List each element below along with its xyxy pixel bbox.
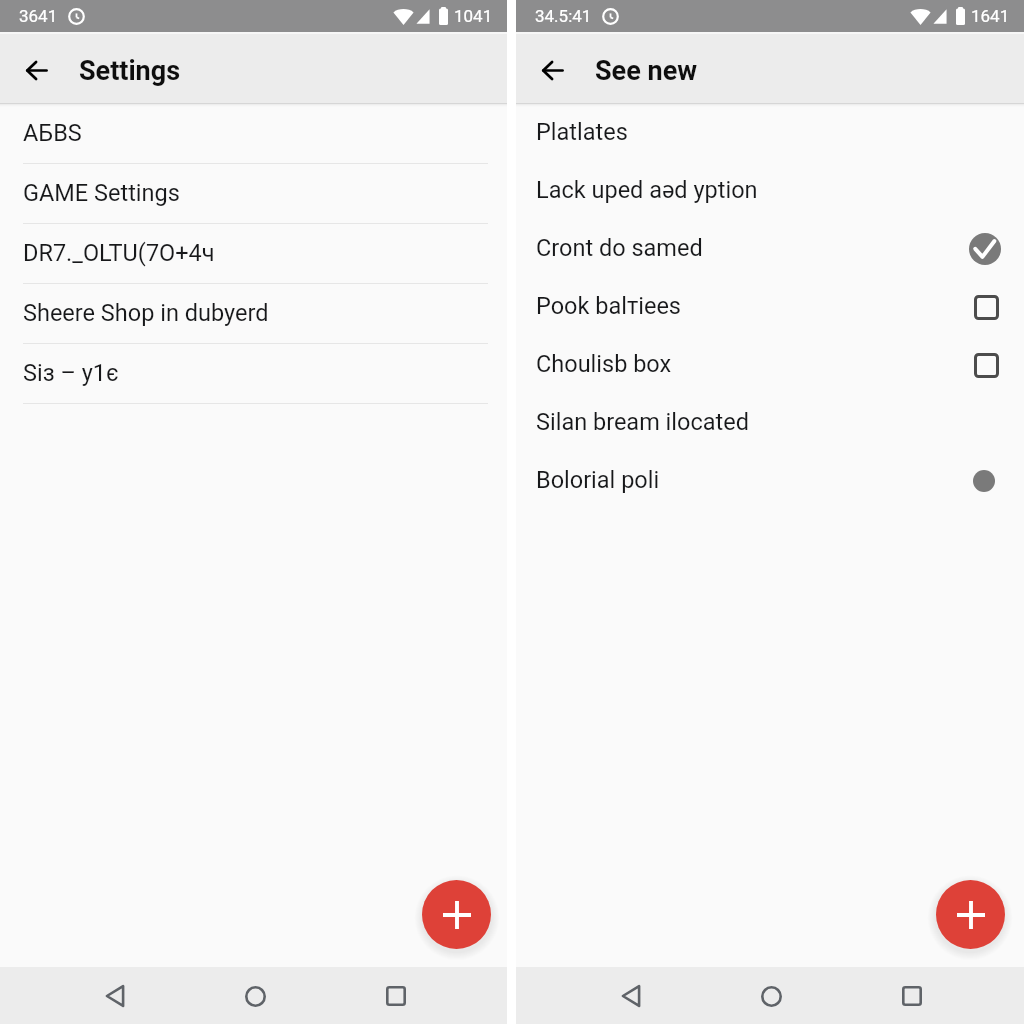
button[interactable]: DR7._OLTU(7O+4ч [0, 224, 507, 284]
staticText: Cront do samed [536, 234, 703, 262]
staticText: Silan bream ilocated [536, 408, 749, 436]
staticText: DR7._OLTU(7O+4ч [23, 239, 215, 267]
staticText: 1641 [971, 6, 1010, 26]
staticText: 1041 [454, 6, 493, 26]
staticText: 3641 [19, 6, 58, 26]
button[interactable]: Back [605, 970, 657, 1022]
button[interactable]: Back [89, 970, 141, 1022]
button[interactable]: Recents [370, 970, 422, 1022]
staticText: GAME Settings [23, 179, 180, 207]
staticText: Siз – у1є [23, 359, 119, 387]
button[interactable]: Lack uped aəd yption [516, 162, 1024, 220]
button[interactable]: Choulisb box [516, 336, 1024, 394]
staticText: Platlates [536, 118, 628, 146]
button[interactable]: Cront do samed [516, 220, 1024, 278]
button[interactable]: Home [745, 970, 797, 1022]
staticText: AБBS [23, 119, 82, 147]
staticText: Lack uped aəd yption [536, 176, 758, 204]
staticText: See new [595, 55, 698, 87]
button[interactable]: Add [936, 880, 1005, 949]
button[interactable]: Platlates [516, 104, 1024, 162]
staticText: 34.5:41 [535, 6, 592, 26]
button[interactable]: GAME Settings [0, 164, 507, 224]
button[interactable]: Recents [886, 970, 938, 1022]
button[interactable]: AБBS [0, 104, 507, 164]
button[interactable]: Add [422, 880, 491, 949]
staticText: Bolorial poli [536, 466, 660, 494]
staticText: Settings [79, 55, 181, 87]
button[interactable]: Bolorial poli [516, 452, 1024, 510]
staticText: Pook balтiees [536, 292, 681, 320]
button[interactable]: Home [229, 970, 281, 1022]
button[interactable]: Back [14, 48, 58, 92]
staticText: Choulisb box [536, 350, 672, 378]
button[interactable]: Silan bream ilocated [516, 394, 1024, 452]
button[interactable]: Siз – у1є [0, 344, 507, 404]
button[interactable]: Back [530, 48, 574, 92]
button[interactable]: Sheere Shop in dubyerd [0, 284, 507, 344]
button[interactable]: Pook balтiees [516, 278, 1024, 336]
staticText: Sheere Shop in dubyerd [23, 299, 269, 327]
